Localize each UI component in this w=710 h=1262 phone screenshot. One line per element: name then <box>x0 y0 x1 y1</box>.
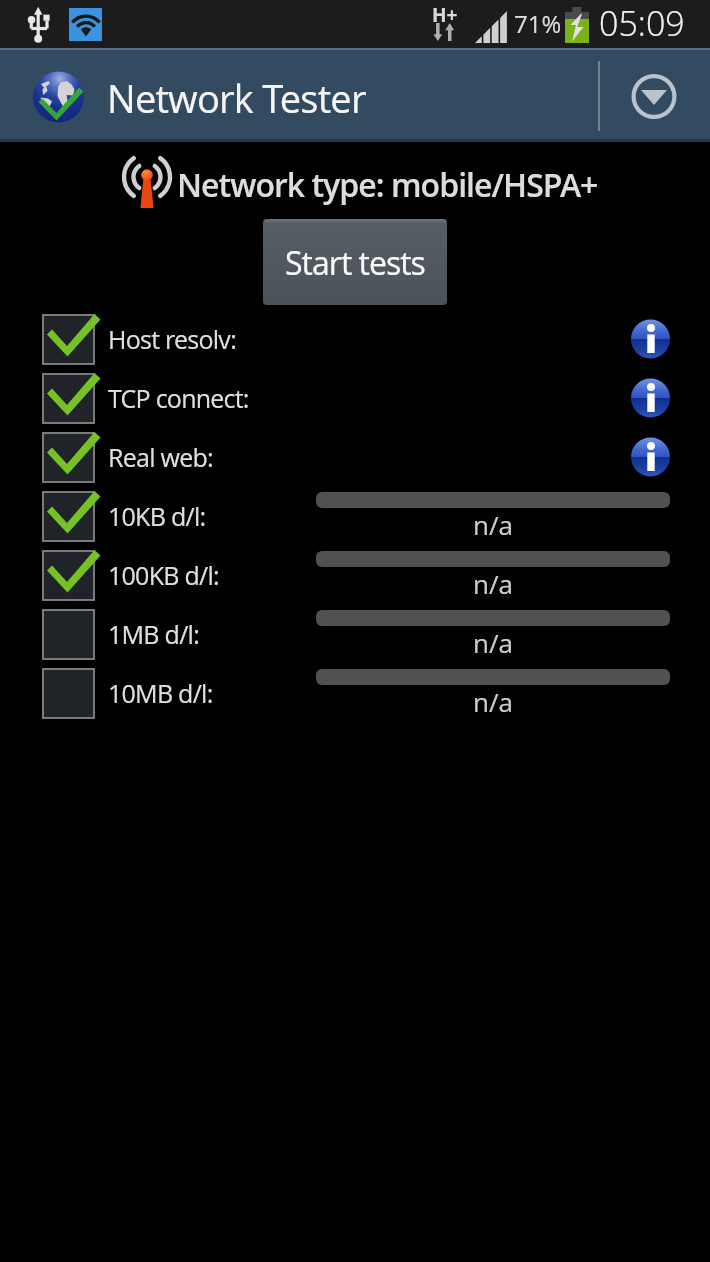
staticText: n/a <box>316 566 670 601</box>
button[interactable]: Info <box>627 314 673 360</box>
staticText: Network Tester <box>107 72 366 124</box>
staticText: Network type: mobile/HSPA+ <box>177 163 598 207</box>
button[interactable] <box>36 367 676 425</box>
button[interactable] <box>36 485 676 543</box>
staticText: n/a <box>316 507 670 542</box>
button[interactable]: Start tests <box>263 219 447 305</box>
button[interactable] <box>36 426 676 484</box>
button[interactable]: Info <box>627 373 673 419</box>
staticText: 1MB d/l: <box>108 617 200 651</box>
staticText: 05:09 <box>599 0 685 46</box>
button[interactable]: Info <box>627 432 673 478</box>
staticText: 10KB d/l: <box>108 499 206 533</box>
staticText: Real web: <box>108 440 213 474</box>
staticText: 71% <box>514 7 562 40</box>
staticText: Start tests <box>285 241 425 285</box>
staticText: n/a <box>316 684 670 719</box>
button[interactable] <box>36 544 676 602</box>
button[interactable] <box>36 603 676 661</box>
staticText: 10MB d/l: <box>108 676 213 710</box>
button[interactable] <box>36 308 676 366</box>
button[interactable]: More options <box>628 70 680 122</box>
button[interactable] <box>36 662 676 720</box>
staticText: 100KB d/l: <box>108 558 219 592</box>
staticText: n/a <box>316 625 670 660</box>
staticText: H+ <box>432 2 458 28</box>
staticText: Host resolv: <box>108 322 237 356</box>
staticText: TCP connect: <box>108 381 249 415</box>
